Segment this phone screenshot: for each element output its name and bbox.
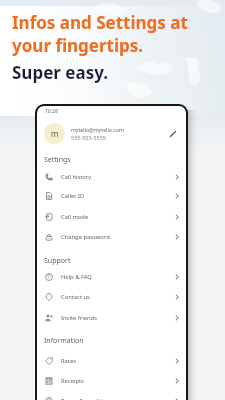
staticText: Caller ID [61,192,85,200]
button[interactable]: Edit profile [166,127,180,141]
button[interactable]: Call history [37,167,186,187]
staticText: Invite friends [61,314,97,322]
staticText: Information [44,336,84,346]
button[interactable]: Rates [37,351,186,371]
staticText: Receipts [61,377,84,385]
staticText: Support [44,256,71,266]
button[interactable]: Contact us [37,287,186,307]
button[interactable]: m [37,120,186,147]
staticText: 10:28 [45,108,58,115]
staticText: 555-555-5555 [71,134,107,141]
staticText: Terms & conditions [61,397,114,400]
staticText: Call history [61,173,92,181]
staticText: Help & FAQ [61,273,92,281]
staticText: Call mode [61,213,89,221]
button[interactable]: Receipts [37,371,186,391]
staticText: Rates [61,357,76,365]
staticText: Contact us [61,293,90,301]
staticText: m [51,128,59,139]
button[interactable]: Call mode [37,207,186,227]
staticText: Settings [44,155,71,165]
staticText: mytello@mytello.com [71,126,124,133]
button[interactable]: Terms & conditions [37,391,186,400]
staticText: Infos and Settings at your fingertips. [12,11,188,57]
button[interactable]: Help & FAQ [37,267,186,287]
staticText: Super easy. [12,61,108,84]
button[interactable]: Caller ID [37,186,186,206]
button[interactable]: Invite friends [37,308,186,328]
staticText: Change password [61,233,110,241]
button[interactable]: Change password [37,227,186,247]
